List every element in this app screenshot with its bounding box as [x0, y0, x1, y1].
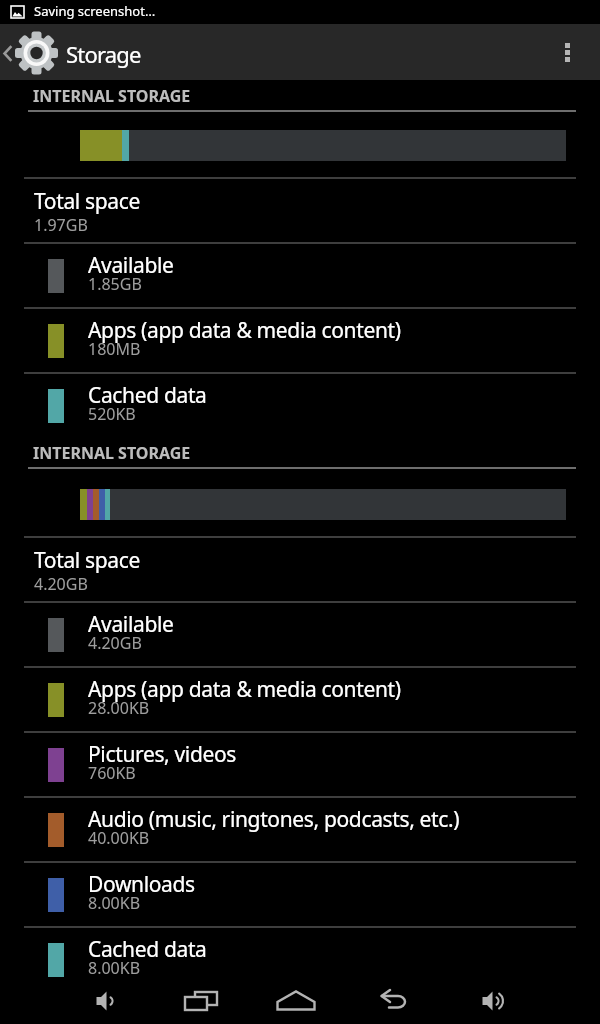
button[interactable]: Audio (music, ringtones, podcasts, etc.): [0, 796, 600, 861]
staticText: 180MB: [88, 338, 141, 360]
staticText: 520KB: [88, 403, 136, 425]
staticText: Cached data: [88, 381, 207, 410]
button[interactable]: Available: [0, 601, 600, 666]
staticText: 4.20GB: [88, 632, 142, 654]
staticText: Available: [88, 610, 174, 639]
staticText: Total space: [34, 187, 140, 216]
staticText: Saving screenshot…: [34, 2, 156, 20]
button[interactable]: Total space: [0, 536, 600, 601]
staticText: Audio (music, ringtones, podcasts, etc.): [88, 805, 460, 834]
button[interactable]: Downloads: [0, 861, 600, 926]
button[interactable]: [272, 984, 320, 1024]
staticText: INTERNAL STORAGE: [33, 85, 191, 107]
staticText: 8.00KB: [88, 892, 141, 914]
button[interactable]: Cached data: [0, 926, 600, 977]
staticText: 40.00KB: [88, 827, 150, 849]
staticText: 28.00KB: [88, 697, 150, 719]
button[interactable]: [550, 24, 600, 80]
staticText: Cached data: [88, 935, 207, 964]
button[interactable]: Pictures, videos: [0, 731, 600, 796]
staticText: 760KB: [88, 762, 136, 784]
staticText: 4.20GB: [34, 573, 88, 595]
staticText: Apps (app data & media content): [88, 316, 401, 345]
staticText: Apps (app data & media content): [88, 675, 401, 704]
button[interactable]: [0, 24, 64, 80]
button[interactable]: Apps (app data & media content): [0, 307, 600, 372]
button[interactable]: [369, 984, 417, 1024]
button[interactable]: Total space: [0, 177, 600, 242]
staticText: INTERNAL STORAGE: [33, 442, 191, 464]
staticText: Available: [88, 251, 174, 280]
button[interactable]: Apps (app data & media content): [0, 666, 600, 731]
staticText: Total space: [34, 546, 140, 575]
staticText: Storage: [66, 39, 141, 69]
button[interactable]: Cached data: [0, 372, 600, 437]
staticText: 1.85GB: [88, 273, 142, 295]
button[interactable]: [177, 984, 225, 1024]
button[interactable]: Available: [0, 242, 600, 307]
staticText: 8.00KB: [88, 957, 141, 977]
button[interactable]: [468, 984, 516, 1024]
staticText: 1.97GB: [34, 214, 88, 236]
staticText: Pictures, videos: [88, 740, 237, 769]
button[interactable]: [82, 984, 130, 1024]
staticText: Downloads: [88, 870, 195, 899]
